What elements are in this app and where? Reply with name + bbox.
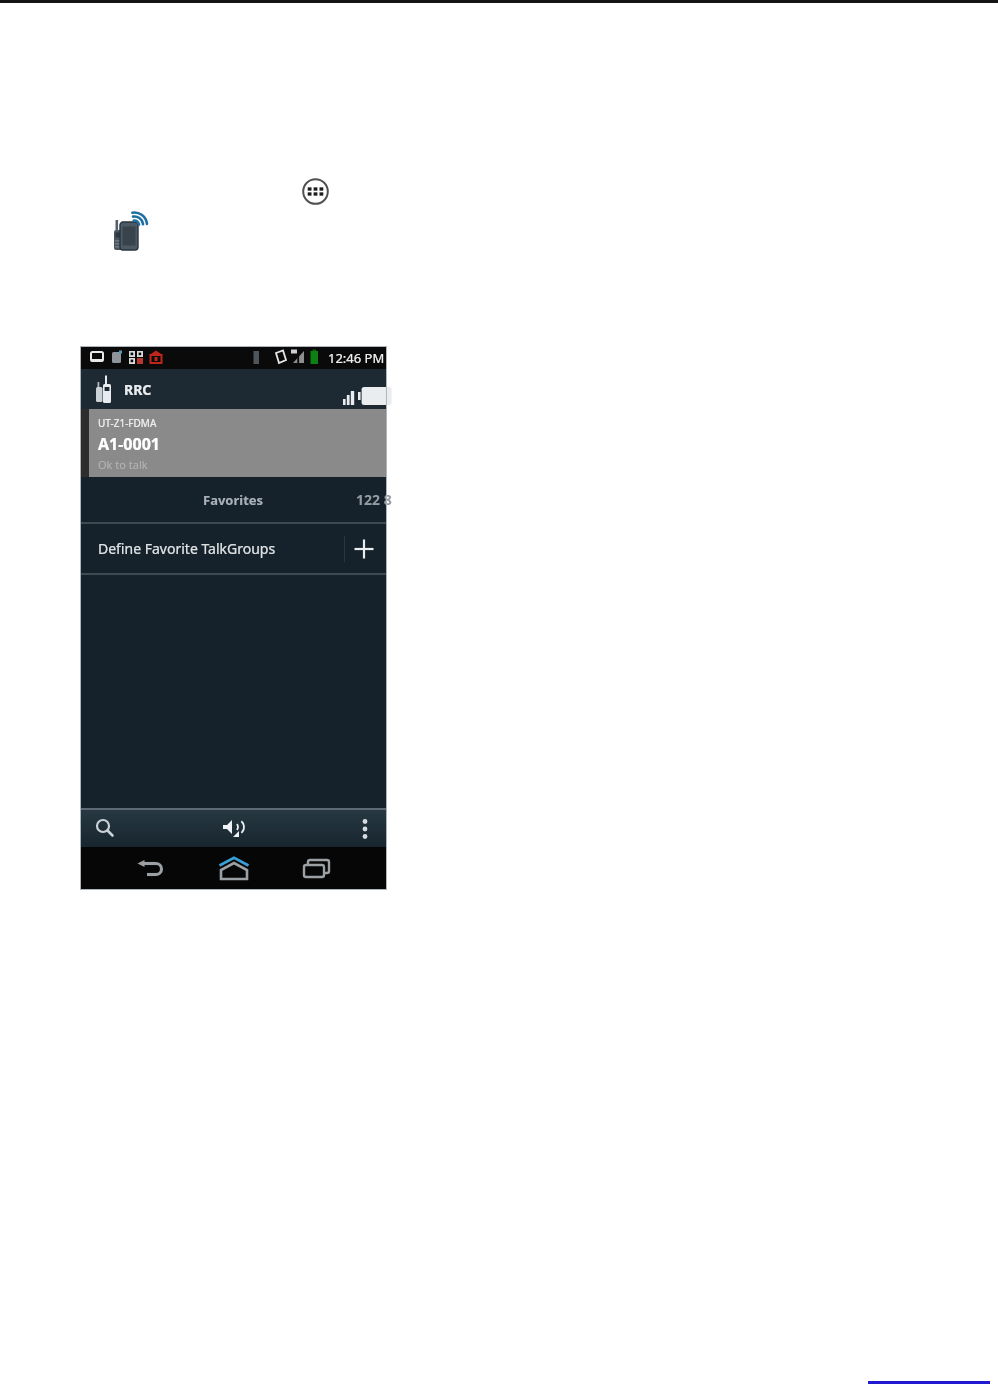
button[interactable] [218,857,250,881]
button[interactable]: UT-Z1-FDMA [80,409,387,477]
button[interactable]: Define Favorite TalkGroups [80,524,387,573]
staticText: 12:46 PM [328,349,385,367]
staticText: Define Favorite TalkGroups [98,539,276,558]
staticText: A1-0001 [98,433,160,455]
button[interactable] [95,818,117,840]
button[interactable]: RRC [80,374,152,404]
button[interactable] [362,818,368,840]
staticText: Favorites [203,491,264,509]
button[interactable] [221,817,247,841]
staticText: 122 8 [356,490,392,509]
button[interactable] [302,178,329,205]
button[interactable] [301,858,331,880]
staticText: RRC [124,380,152,399]
staticText: UT-Z1-FDMA [98,416,157,430]
staticText: Ok to talk [98,457,148,472]
button[interactable] [354,539,374,559]
button[interactable] [110,214,150,254]
button[interactable] [135,860,165,878]
